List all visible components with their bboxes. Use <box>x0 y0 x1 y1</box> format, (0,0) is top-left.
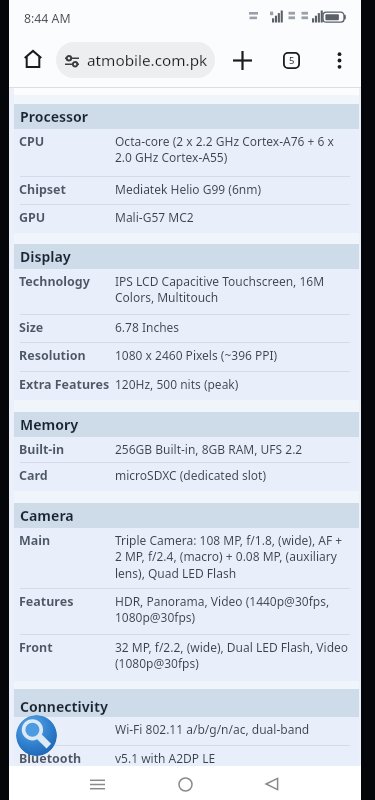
button[interactable]: Features <box>14 589 359 635</box>
staticText: Extra Features <box>19 376 115 393</box>
button[interactable]: Home <box>168 767 202 800</box>
staticText: CPU <box>19 133 115 150</box>
button[interactable]: Back <box>255 767 289 800</box>
button[interactable]: Size <box>14 315 359 343</box>
button[interactable]: Processor <box>14 104 359 129</box>
staticText: 256GB Built-in, 8GB RAM, UFS 2.2 <box>115 441 350 457</box>
staticText: Features <box>19 593 115 610</box>
staticText: Mediatek Helio G99 (6nm) <box>115 181 350 197</box>
staticText: Size <box>19 319 115 336</box>
staticText: Resolution <box>19 347 115 364</box>
staticText: Processor <box>20 107 89 126</box>
button[interactable]: Built-in <box>14 437 359 463</box>
button[interactable]: Resolution <box>14 343 359 372</box>
staticText: Triple Camera: 108 MP, f/1.8, (wide), AF… <box>115 532 350 582</box>
button[interactable]: Recents <box>80 767 114 800</box>
staticText: Card <box>19 467 115 484</box>
button[interactable]: Search <box>16 715 57 756</box>
staticText <box>19 721 115 738</box>
button[interactable]: Wi-Fi 802.11 a/b/g/n/ac, dual-band <box>14 717 359 746</box>
button[interactable]: Connectivity <box>14 689 359 717</box>
button[interactable]: New tab <box>224 42 260 78</box>
button[interactable]: Memory <box>14 412 359 437</box>
button[interactable]: Tabs <box>273 42 309 78</box>
staticText: v5.1 with A2DP LE <box>115 750 350 766</box>
button[interactable]: Chipset <box>14 177 359 205</box>
staticText: microSDXC (dedicated slot) <box>115 467 350 483</box>
button[interactable]: Main <box>14 528 359 589</box>
staticText: Wi-Fi 802.11 a/b/g/n/ac, dual-band <box>115 721 350 737</box>
staticText: Built-in <box>19 441 115 458</box>
staticText: HDR, Panorama, Video (1440p@30fps, 1080p… <box>115 593 350 626</box>
staticText: Main <box>19 532 115 549</box>
staticText: 5 <box>289 54 295 67</box>
button[interactable]: More options <box>321 42 357 78</box>
staticText: Technology <box>19 273 115 290</box>
staticText: Display <box>20 247 71 266</box>
staticText: IPS LCD Capacitive Touchscreen, 16M Colo… <box>115 273 350 306</box>
button[interactable]: Bluetooth <box>14 746 359 766</box>
staticText: Connectivity <box>20 697 109 716</box>
button[interactable]: Extra Features <box>14 372 359 400</box>
button[interactable]: Display <box>14 244 359 269</box>
staticText: Mali-G57 MC2 <box>115 209 350 225</box>
staticText: Bluetooth <box>19 750 115 766</box>
button[interactable]: Camera <box>14 503 359 528</box>
staticText: GPU <box>19 209 115 226</box>
button[interactable]: Front <box>14 635 359 681</box>
staticText: 6.78 Inches <box>115 319 350 335</box>
button[interactable]: atmobile.com.pk <box>56 42 215 78</box>
staticText: Front <box>19 639 115 656</box>
staticText: 32 MP, f/2.2, (wide), Dual LED Flash, Vi… <box>115 639 350 672</box>
button[interactable]: Home <box>15 41 51 77</box>
staticText: 1080 x 2460 Pixels (~396 PPI) <box>115 347 350 363</box>
staticText: Chipset <box>19 181 115 198</box>
button[interactable]: GPU <box>14 205 359 233</box>
staticText: atmobile.com.pk <box>87 50 208 71</box>
staticText: Camera <box>20 506 74 525</box>
staticText: 120Hz, 500 nits (peak) <box>115 376 350 392</box>
staticText: Octa-core (2 x 2.2 GHz Cortex-A76 + 6 x … <box>115 133 350 166</box>
button[interactable]: Card <box>14 463 359 491</box>
staticText: Memory <box>20 415 79 434</box>
staticText: 8:44 AM <box>24 10 71 27</box>
button[interactable]: Technology <box>14 269 359 315</box>
button[interactable]: CPU <box>14 129 359 177</box>
